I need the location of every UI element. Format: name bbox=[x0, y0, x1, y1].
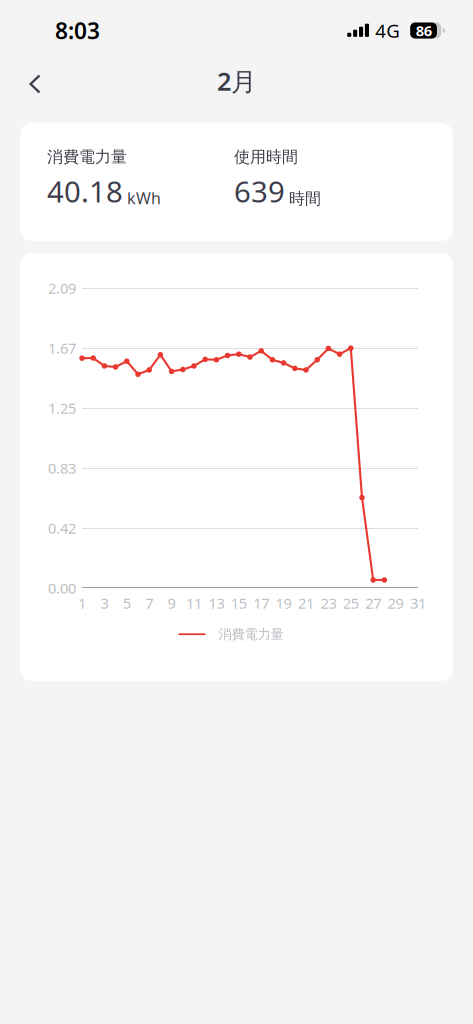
staticText: 9 bbox=[168, 593, 176, 613]
staticText: 5 bbox=[123, 593, 131, 613]
button[interactable]: Back bbox=[0, 62, 57, 106]
staticText: 21 bbox=[298, 593, 314, 613]
staticText: 2.09 bbox=[48, 278, 76, 298]
staticText: 3 bbox=[100, 593, 108, 613]
staticText: 消費電力量 bbox=[47, 147, 127, 167]
staticText: 2月 bbox=[217, 64, 256, 98]
staticText: 7 bbox=[145, 593, 153, 613]
staticText: 29 bbox=[388, 593, 404, 613]
staticText: 1 bbox=[78, 593, 86, 613]
staticText: 31 bbox=[410, 593, 426, 613]
staticText: 0.00 bbox=[48, 578, 76, 598]
staticText: 13 bbox=[208, 593, 224, 613]
staticText: 17 bbox=[253, 593, 269, 613]
staticText: 4G bbox=[375, 18, 400, 43]
staticText: 23 bbox=[320, 593, 336, 613]
staticText: 使用時間 bbox=[234, 147, 298, 167]
staticText: 15 bbox=[231, 593, 247, 613]
staticText: 11 bbox=[186, 593, 202, 613]
staticText: 19 bbox=[276, 593, 292, 613]
staticText: 639 bbox=[234, 172, 285, 211]
staticText: 0.83 bbox=[48, 458, 76, 478]
staticText: 8:03 bbox=[55, 15, 100, 45]
staticText: 27 bbox=[365, 593, 381, 613]
staticText: 時間 bbox=[289, 189, 321, 209]
staticText: 消費電力量 bbox=[218, 626, 283, 642]
staticText: 1.25 bbox=[48, 398, 76, 418]
staticText: kWh bbox=[127, 187, 161, 209]
staticText: 25 bbox=[343, 593, 359, 613]
staticText: 86 bbox=[416, 21, 432, 40]
staticText: 0.42 bbox=[48, 518, 76, 538]
staticText: 40.18 bbox=[47, 172, 123, 211]
staticText: 1.67 bbox=[48, 338, 76, 358]
